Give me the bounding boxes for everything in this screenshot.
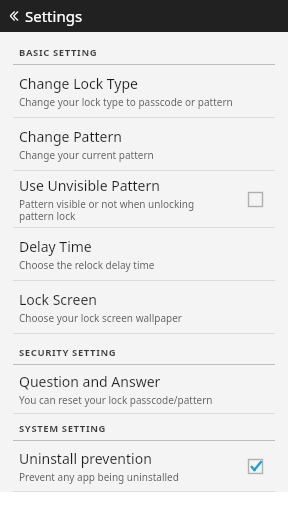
- staticText: You can reset your lock passcode/pattern: [19, 393, 213, 407]
- staticText: Choose your lock screen wallpaper: [19, 311, 182, 325]
- staticText: Change Lock Type: [19, 74, 138, 93]
- staticText: Lock Screen: [19, 290, 97, 309]
- button[interactable]: Use Unvisible Pattern: [238, 182, 272, 216]
- staticText: Prevent any app being uninstalled: [19, 470, 179, 484]
- staticText: Uninstall prevention: [19, 449, 152, 468]
- button[interactable]: Use Unvisible Pattern: [0, 171, 288, 227]
- staticText: BASIC SETTING: [19, 46, 98, 59]
- staticText: Question and Answer: [19, 372, 161, 391]
- staticText: Change your lock type to passcode or pat…: [19, 95, 233, 109]
- button[interactable]: Uninstall prevention: [238, 449, 272, 483]
- staticText: Use Unvisible Pattern: [19, 176, 160, 195]
- button[interactable]: Delay Time: [0, 228, 288, 280]
- staticText: SECURITY SETTING: [19, 346, 117, 359]
- staticText: Change Pattern: [19, 127, 122, 146]
- staticText: Choose the relock delay time: [19, 258, 155, 272]
- button[interactable]: Back: [0, 0, 288, 32]
- button[interactable]: Change Pattern: [0, 118, 288, 170]
- staticText: SYSTEM SETTING: [19, 422, 107, 435]
- button[interactable]: Question and Answer: [0, 365, 288, 413]
- staticText: Delay Time: [19, 237, 92, 256]
- staticText: Settings: [25, 6, 83, 26]
- staticText: Change your current pattern: [19, 148, 154, 162]
- button[interactable]: Change Lock Type: [0, 65, 288, 117]
- staticText: Pattern visible or not when unlocking pa…: [19, 197, 195, 223]
- button[interactable]: Uninstall prevention: [0, 441, 288, 491]
- button[interactable]: Lock Screen: [0, 281, 288, 333]
